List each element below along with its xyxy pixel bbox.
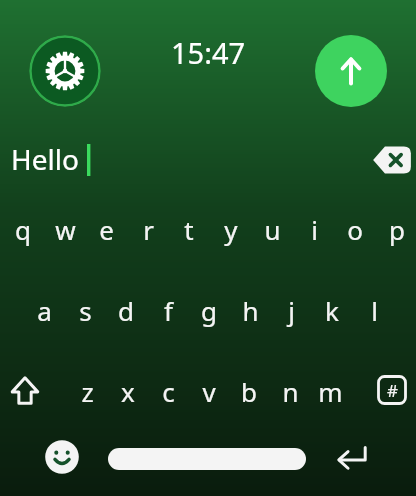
button[interactable]: k — [313, 288, 351, 332]
button[interactable]: Text input — [0, 134, 416, 188]
button[interactable]: x — [109, 369, 147, 413]
button[interactable]: Symbols — [371, 369, 413, 411]
button[interactable]: Shift — [3, 369, 47, 413]
staticText: l — [371, 293, 378, 328]
staticText: Hello — [11, 140, 79, 178]
button[interactable]: r — [129, 207, 167, 251]
staticText: b — [241, 374, 257, 409]
button[interactable]: j — [272, 288, 310, 332]
button[interactable]: Space — [108, 448, 306, 470]
button[interactable]: Enter — [330, 437, 374, 481]
button[interactable]: b — [230, 369, 268, 413]
staticText: u — [264, 212, 281, 247]
button[interactable]: m — [311, 369, 349, 413]
staticText: w — [55, 212, 76, 247]
button[interactable]: n — [271, 369, 309, 413]
staticText: m — [318, 374, 343, 409]
staticText: q — [15, 212, 31, 247]
button[interactable]: t — [170, 207, 208, 251]
staticText: p — [389, 212, 405, 247]
button[interactable]: h — [231, 288, 269, 332]
staticText: j — [288, 293, 295, 328]
button[interactable]: Emoji — [42, 437, 82, 477]
button[interactable]: i — [295, 207, 333, 251]
staticText: i — [311, 212, 318, 247]
staticText: f — [164, 293, 173, 328]
button[interactable]: p — [378, 207, 416, 251]
button[interactable]: q — [4, 207, 42, 251]
button[interactable]: f — [149, 288, 187, 332]
button[interactable]: Send — [315, 35, 387, 107]
button[interactable]: a — [25, 288, 63, 332]
staticText: c — [162, 374, 175, 409]
staticText: o — [347, 212, 363, 247]
staticText: s — [79, 293, 92, 328]
staticText: # — [387, 379, 398, 402]
button[interactable]: e — [87, 207, 125, 251]
button[interactable]: v — [190, 369, 228, 413]
button[interactable]: w — [46, 207, 84, 251]
button[interactable]: g — [190, 288, 228, 332]
button[interactable]: Backspace — [371, 139, 413, 181]
button[interactable]: s — [66, 288, 104, 332]
staticText: y — [224, 212, 238, 247]
button[interactable]: Settings — [29, 35, 101, 107]
staticText: v — [202, 374, 216, 409]
button[interactable]: u — [253, 207, 291, 251]
button[interactable]: c — [149, 369, 187, 413]
staticText: k — [325, 293, 339, 328]
staticText: t — [184, 212, 194, 247]
staticText: 15:47 — [171, 33, 246, 72]
staticText: x — [121, 374, 135, 409]
staticText: n — [282, 374, 299, 409]
staticText: g — [201, 293, 217, 328]
button[interactable]: z — [68, 369, 106, 413]
button[interactable]: d — [107, 288, 145, 332]
staticText: a — [37, 293, 52, 328]
staticText: h — [242, 293, 259, 328]
button[interactable]: y — [212, 207, 250, 251]
button[interactable]: l — [355, 288, 393, 332]
staticText: r — [143, 212, 154, 247]
staticText: d — [118, 293, 134, 328]
staticText: e — [99, 212, 114, 247]
button[interactable]: o — [336, 207, 374, 251]
staticText: z — [81, 374, 94, 409]
